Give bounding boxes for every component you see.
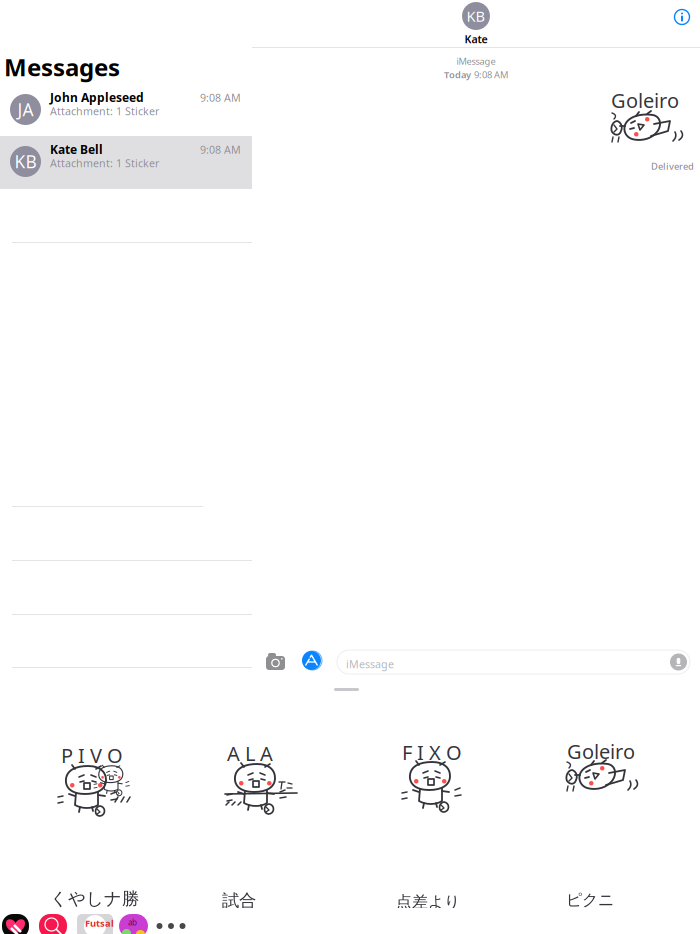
button[interactable]: P I V O bbox=[58, 742, 148, 818]
button[interactable]: Futsal stickers bbox=[77, 914, 113, 934]
staticText: くやしナ勝－ bbox=[50, 888, 139, 931]
staticText: ピクニ bbox=[566, 890, 614, 910]
staticText: iMessage bbox=[456, 55, 495, 67]
button[interactable]: Goleiro bbox=[563, 738, 641, 814]
button[interactable]: Dictate bbox=[670, 653, 687, 670]
button[interactable]: Details bbox=[674, 9, 690, 25]
button[interactable]: 試合 bbox=[222, 890, 292, 934]
staticText: 9:08 AM bbox=[200, 142, 241, 157]
staticText: F I X O bbox=[402, 739, 462, 766]
button[interactable]: くやしナ勝－ bbox=[50, 888, 140, 934]
button[interactable]: Camera bbox=[266, 653, 285, 670]
staticText: Goleiro bbox=[567, 738, 635, 765]
staticText: JA bbox=[17, 98, 33, 121]
button[interactable]: More apps bbox=[154, 914, 188, 934]
staticText: Futsal bbox=[85, 917, 114, 929]
button[interactable]: F I X O bbox=[401, 739, 471, 815]
staticText: 点差より bbox=[396, 892, 460, 912]
button[interactable]: Recents bbox=[2, 914, 29, 934]
button[interactable]: JA bbox=[0, 84, 252, 137]
button[interactable]: Sticker store bbox=[39, 914, 67, 934]
staticText: Attachment: 1 Sticker bbox=[50, 156, 159, 170]
button[interactable]: A L A bbox=[225, 740, 305, 816]
button[interactable]: KB bbox=[0, 136, 252, 189]
staticText: Today bbox=[444, 68, 471, 81]
staticText: KB bbox=[466, 6, 485, 26]
staticText: Goleiro bbox=[611, 87, 679, 114]
staticText: P I V O bbox=[61, 742, 123, 769]
staticText: Messages bbox=[4, 51, 120, 83]
staticText: 9:08 AM bbox=[474, 68, 508, 81]
button[interactable]: 点差より bbox=[396, 892, 466, 934]
staticText: KB bbox=[14, 150, 36, 173]
staticText: Delivered bbox=[651, 160, 694, 172]
button[interactable]: Sticker pack bbox=[119, 914, 148, 934]
button[interactable]: ピクニ bbox=[566, 890, 644, 934]
staticText: Kate bbox=[464, 32, 487, 46]
staticText: A L A bbox=[227, 740, 273, 767]
staticText: Kate Bell bbox=[50, 141, 103, 157]
staticText: 9:08 AM bbox=[200, 90, 241, 105]
staticText: Attachment: 1 Sticker bbox=[50, 104, 159, 118]
staticText: 試合 bbox=[222, 890, 256, 911]
button[interactable]: KB bbox=[441, 0, 511, 44]
staticText: iMessage bbox=[346, 657, 394, 671]
button[interactable]: iMessage apps bbox=[302, 651, 322, 670]
staticText: John Appleseed bbox=[50, 89, 144, 105]
staticText: ab bbox=[128, 917, 137, 928]
